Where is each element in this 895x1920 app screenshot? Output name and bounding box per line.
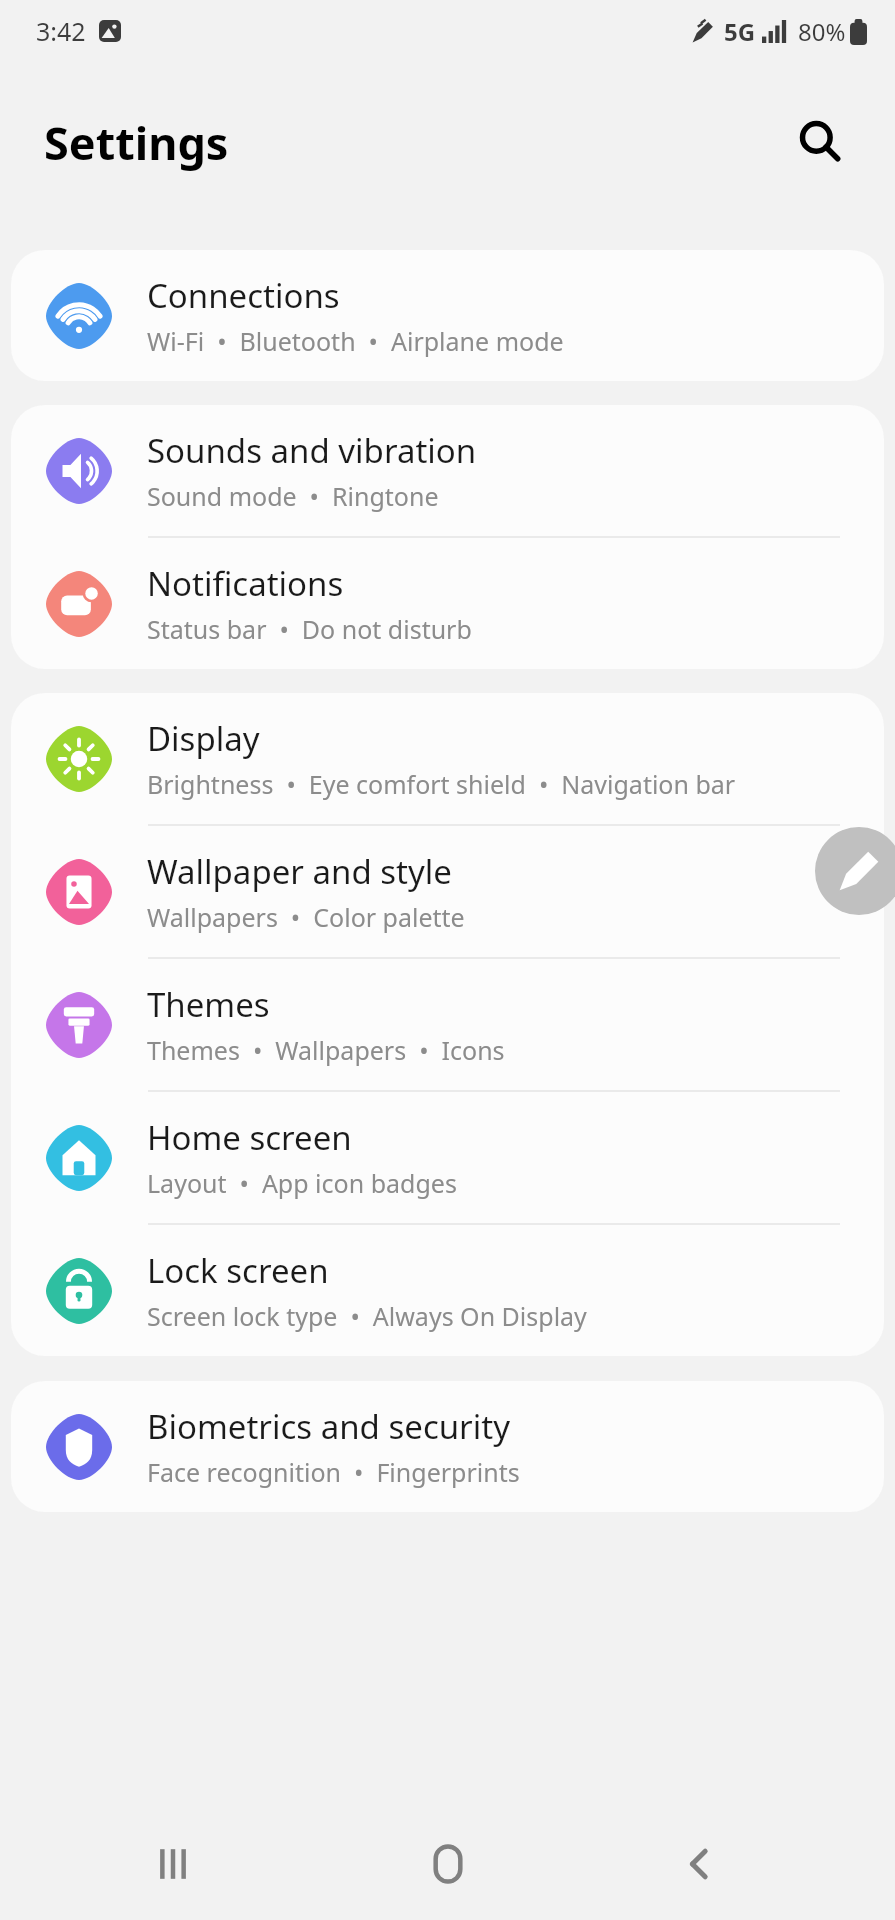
staticText: Wallpaper and style [147,849,452,894]
staticText: Notifications [147,561,344,606]
staticText: Wallpapers • Color palette [147,900,465,934]
staticText: Biometrics and security [147,1404,510,1449]
staticText: Wi-Fi • Bluetooth • Airplane mode [147,324,564,358]
staticText: 80% [798,15,846,48]
button[interactable]: Search [783,105,857,179]
staticText: Sounds and vibration [147,428,477,473]
button[interactable]: Home screen [11,1092,884,1223]
staticText: Face recognition • Fingerprints [147,1455,520,1489]
staticText: Brightness • Eye comfort shield • Naviga… [147,767,736,801]
staticText: Screen lock type • Always On Display [147,1299,587,1333]
staticText: Layout • App icon badges [147,1166,457,1200]
staticText: Themes • Wallpapers • Icons [147,1033,505,1067]
staticText: Settings [44,112,229,173]
button[interactable]: Home [408,1824,488,1904]
button[interactable]: Sounds and vibration [11,405,884,536]
button[interactable]: Wallpaper and style [11,826,884,957]
staticText: Display [147,716,260,761]
button[interactable]: Biometrics and security [11,1381,884,1512]
staticText: 3:42 [36,14,86,48]
button[interactable]: Recent apps [133,1824,213,1904]
staticText: Sound mode • Ringtone [147,479,439,513]
button[interactable]: Edit [815,827,895,915]
staticText: Home screen [147,1115,352,1160]
button[interactable]: Display [11,693,884,824]
button[interactable]: Themes [11,959,884,1090]
button[interactable]: Notifications [11,538,884,669]
staticText: Status bar • Do not disturb [147,612,472,646]
staticText: Connections [147,273,340,318]
staticText: 5G [724,15,756,48]
button[interactable]: Lock screen [11,1225,884,1356]
staticText: Lock screen [147,1248,329,1293]
button[interactable]: Back [660,1824,740,1904]
staticText: Themes [147,982,270,1027]
button[interactable]: Connections [11,250,884,381]
